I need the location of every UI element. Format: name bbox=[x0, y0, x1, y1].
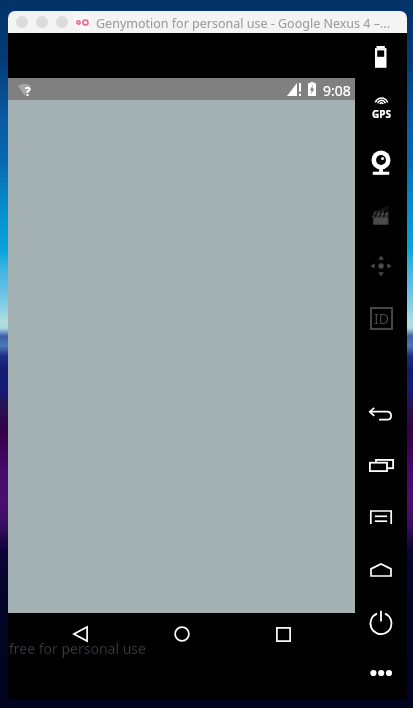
button[interactable]: Minimise bbox=[36, 16, 48, 28]
button[interactable]: Power bbox=[358, 599, 404, 645]
button[interactable]: Back bbox=[63, 617, 97, 651]
button[interactable]: GPS bbox=[358, 86, 404, 132]
button[interactable]: Video recorder bbox=[358, 191, 404, 237]
button[interactable]: More options bbox=[358, 650, 404, 696]
button[interactable]: Recent apps bbox=[266, 617, 300, 651]
staticText: free for personal use bbox=[9, 639, 146, 658]
staticText: Genymotion for personal use - Google Nex… bbox=[96, 15, 391, 32]
staticText: ? bbox=[25, 83, 31, 99]
button[interactable]: Battery bbox=[358, 34, 404, 80]
staticText: 9:08 bbox=[323, 81, 351, 100]
button[interactable]: D-pad bbox=[358, 243, 404, 289]
button[interactable]: Menu bbox=[358, 494, 404, 540]
button[interactable]: Back bbox=[358, 390, 404, 436]
button[interactable]: Identifiers bbox=[358, 295, 404, 341]
button[interactable]: Recent apps bbox=[358, 442, 404, 488]
staticText: GPS bbox=[372, 107, 391, 121]
button[interactable]: Home bbox=[165, 617, 199, 651]
button[interactable]: Camera bbox=[358, 138, 404, 184]
button[interactable]: Zoom bbox=[56, 16, 68, 28]
button[interactable]: Close bbox=[16, 16, 28, 28]
staticText: ID bbox=[374, 309, 389, 328]
button[interactable]: Home bbox=[358, 547, 404, 593]
